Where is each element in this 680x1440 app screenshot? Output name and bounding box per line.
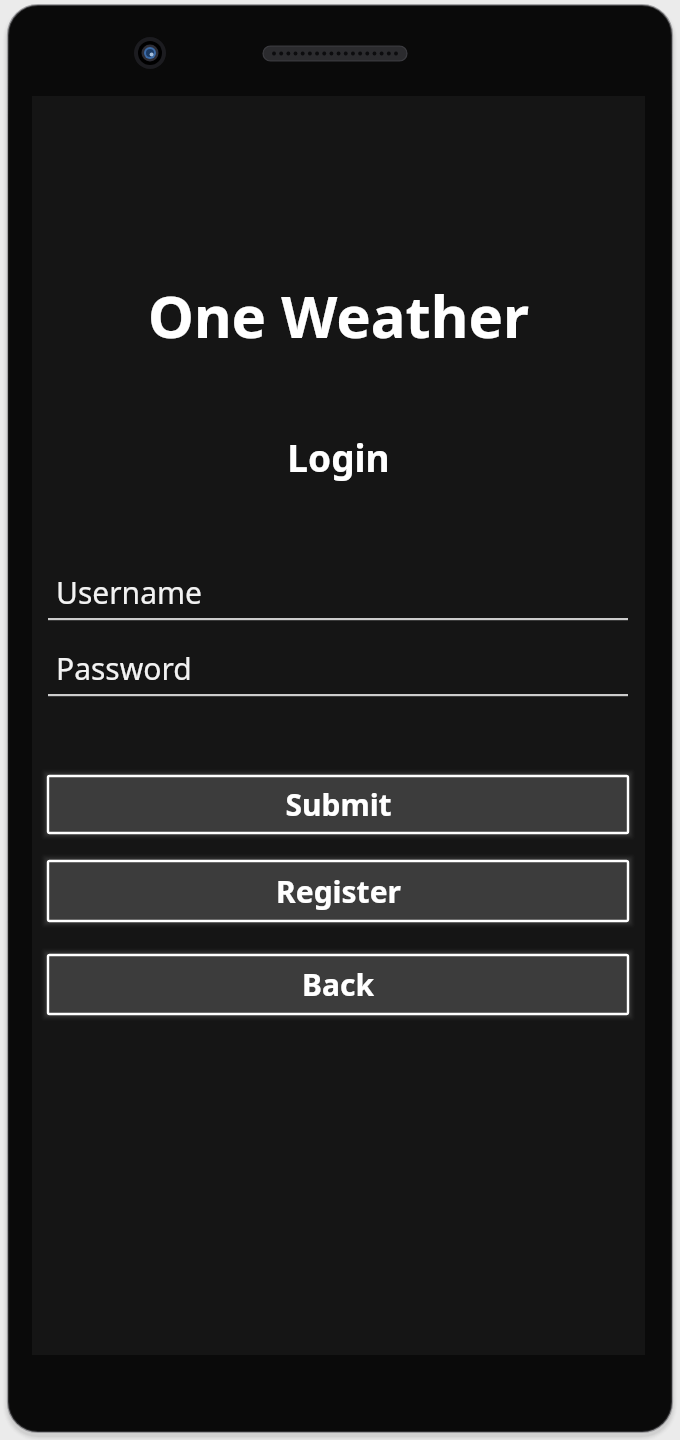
- staticText: Back: [302, 964, 374, 1005]
- staticText: Register: [276, 871, 401, 912]
- button[interactable]: Back: [48, 955, 628, 1014]
- staticText: Password: [56, 648, 192, 689]
- staticText: Username: [56, 572, 202, 613]
- button[interactable]: Register: [48, 861, 628, 921]
- button[interactable]: Password: [48, 638, 628, 696]
- staticText: Login: [32, 432, 645, 486]
- staticText: One Weather: [32, 276, 645, 360]
- button[interactable]: Username: [48, 562, 628, 620]
- staticText: Submit: [285, 784, 392, 825]
- button[interactable]: Submit: [48, 776, 628, 833]
